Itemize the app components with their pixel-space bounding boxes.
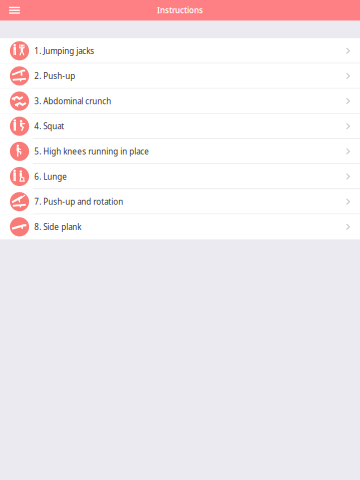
- button[interactable]: 6. Lunge: [0, 164, 360, 189]
- staticText: Instructions: [157, 5, 203, 15]
- button[interactable]: 1. Jumping jacks: [0, 38, 360, 63]
- button[interactable]: 7. Push-up and rotation: [0, 189, 360, 214]
- button[interactable]: 2. Push-up: [0, 63, 360, 88]
- staticText: 3. Abdominal crunch: [34, 96, 111, 106]
- button[interactable]: Menu: [0, 0, 29, 20]
- button[interactable]: 8. Side plank: [0, 214, 360, 239]
- staticText: 7. Push-up and rotation: [34, 196, 123, 207]
- staticText: 8. Side plank: [34, 221, 81, 232]
- button[interactable]: 4. Squat: [0, 114, 360, 139]
- staticText: 1. Jumping jacks: [34, 45, 94, 56]
- staticText: 4. Squat: [34, 121, 64, 131]
- staticText: 2. Push-up: [34, 71, 75, 81]
- button[interactable]: 3. Abdominal crunch: [0, 88, 360, 114]
- staticText: 5. High knees running in place: [34, 146, 149, 157]
- staticText: 6. Lunge: [34, 171, 67, 182]
- button[interactable]: 5. High knees running in place: [0, 139, 360, 164]
